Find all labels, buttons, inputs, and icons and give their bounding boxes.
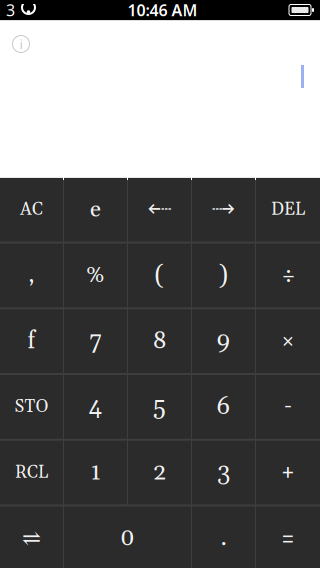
staticText: 9 bbox=[216, 326, 230, 356]
staticText: + bbox=[281, 459, 295, 486]
staticText: ←┄ bbox=[148, 199, 171, 221]
staticText: 2 bbox=[153, 457, 166, 488]
staticText: 5 bbox=[153, 392, 166, 422]
button[interactable]: Decimal point bbox=[192, 506, 255, 568]
staticText: ⇌ bbox=[22, 525, 41, 551]
button[interactable]: 4 bbox=[64, 375, 127, 439]
staticText: . bbox=[220, 523, 226, 553]
button[interactable]: Plus bbox=[256, 441, 320, 504]
button[interactable]: 1 bbox=[64, 441, 127, 504]
staticText: ( bbox=[154, 259, 164, 292]
button[interactable]: 5 bbox=[128, 375, 191, 439]
staticText: DEL bbox=[271, 199, 305, 221]
button[interactable]: 7 bbox=[64, 309, 127, 373]
button[interactable]: 6 bbox=[192, 375, 255, 439]
button[interactable]: Info bbox=[8, 31, 34, 57]
staticText: 4 bbox=[88, 392, 102, 422]
button[interactable]: All clear bbox=[0, 178, 63, 242]
button[interactable]: Swap bbox=[0, 506, 63, 568]
button[interactable]: Store bbox=[0, 375, 63, 439]
staticText: f bbox=[27, 326, 35, 356]
button[interactable]: Percent bbox=[64, 244, 127, 307]
staticText: ) bbox=[218, 259, 228, 292]
button[interactable]: Divide bbox=[256, 244, 320, 307]
staticText: 8 bbox=[152, 326, 166, 356]
staticText: 10:46 AM bbox=[127, 0, 197, 21]
staticText: i bbox=[19, 35, 22, 53]
button[interactable]: 9 bbox=[192, 309, 255, 373]
staticText: RCL bbox=[15, 461, 48, 483]
button[interactable]: Delete bbox=[256, 178, 320, 242]
button[interactable]: Multiply bbox=[256, 309, 320, 373]
button[interactable]: e bbox=[64, 178, 127, 242]
staticText: 0 bbox=[120, 523, 135, 553]
button[interactable]: Recall bbox=[0, 441, 63, 504]
staticText: STO bbox=[14, 396, 48, 418]
staticText: , bbox=[28, 261, 34, 290]
button[interactable]: Minus bbox=[256, 375, 320, 439]
staticText: ÷ bbox=[280, 261, 295, 290]
staticText: ┄→ bbox=[212, 199, 235, 221]
staticText: 3 bbox=[6, 0, 15, 21]
staticText: AC bbox=[20, 199, 43, 221]
staticText: 6 bbox=[216, 392, 230, 422]
staticText: = bbox=[281, 525, 295, 552]
button[interactable]: Function bbox=[0, 309, 63, 373]
button[interactable]: Move right bbox=[192, 178, 255, 242]
button[interactable]: Comma bbox=[0, 244, 63, 307]
staticText: × bbox=[281, 328, 294, 354]
button[interactable]: Equals bbox=[256, 506, 320, 568]
button[interactable]: 8 bbox=[128, 309, 191, 373]
button[interactable]: Open paren bbox=[128, 244, 191, 307]
button[interactable]: Move left bbox=[128, 178, 191, 242]
button[interactable]: Close paren bbox=[192, 244, 255, 307]
button[interactable]: 0 bbox=[64, 506, 191, 568]
button[interactable]: 3 bbox=[192, 441, 255, 504]
staticText: - bbox=[284, 393, 292, 420]
staticText: e bbox=[90, 195, 101, 224]
staticText: 7 bbox=[89, 326, 101, 356]
staticText: 3 bbox=[217, 457, 230, 488]
staticText: 1 bbox=[90, 457, 100, 488]
staticText: % bbox=[86, 261, 105, 290]
button[interactable]: 2 bbox=[128, 441, 191, 504]
